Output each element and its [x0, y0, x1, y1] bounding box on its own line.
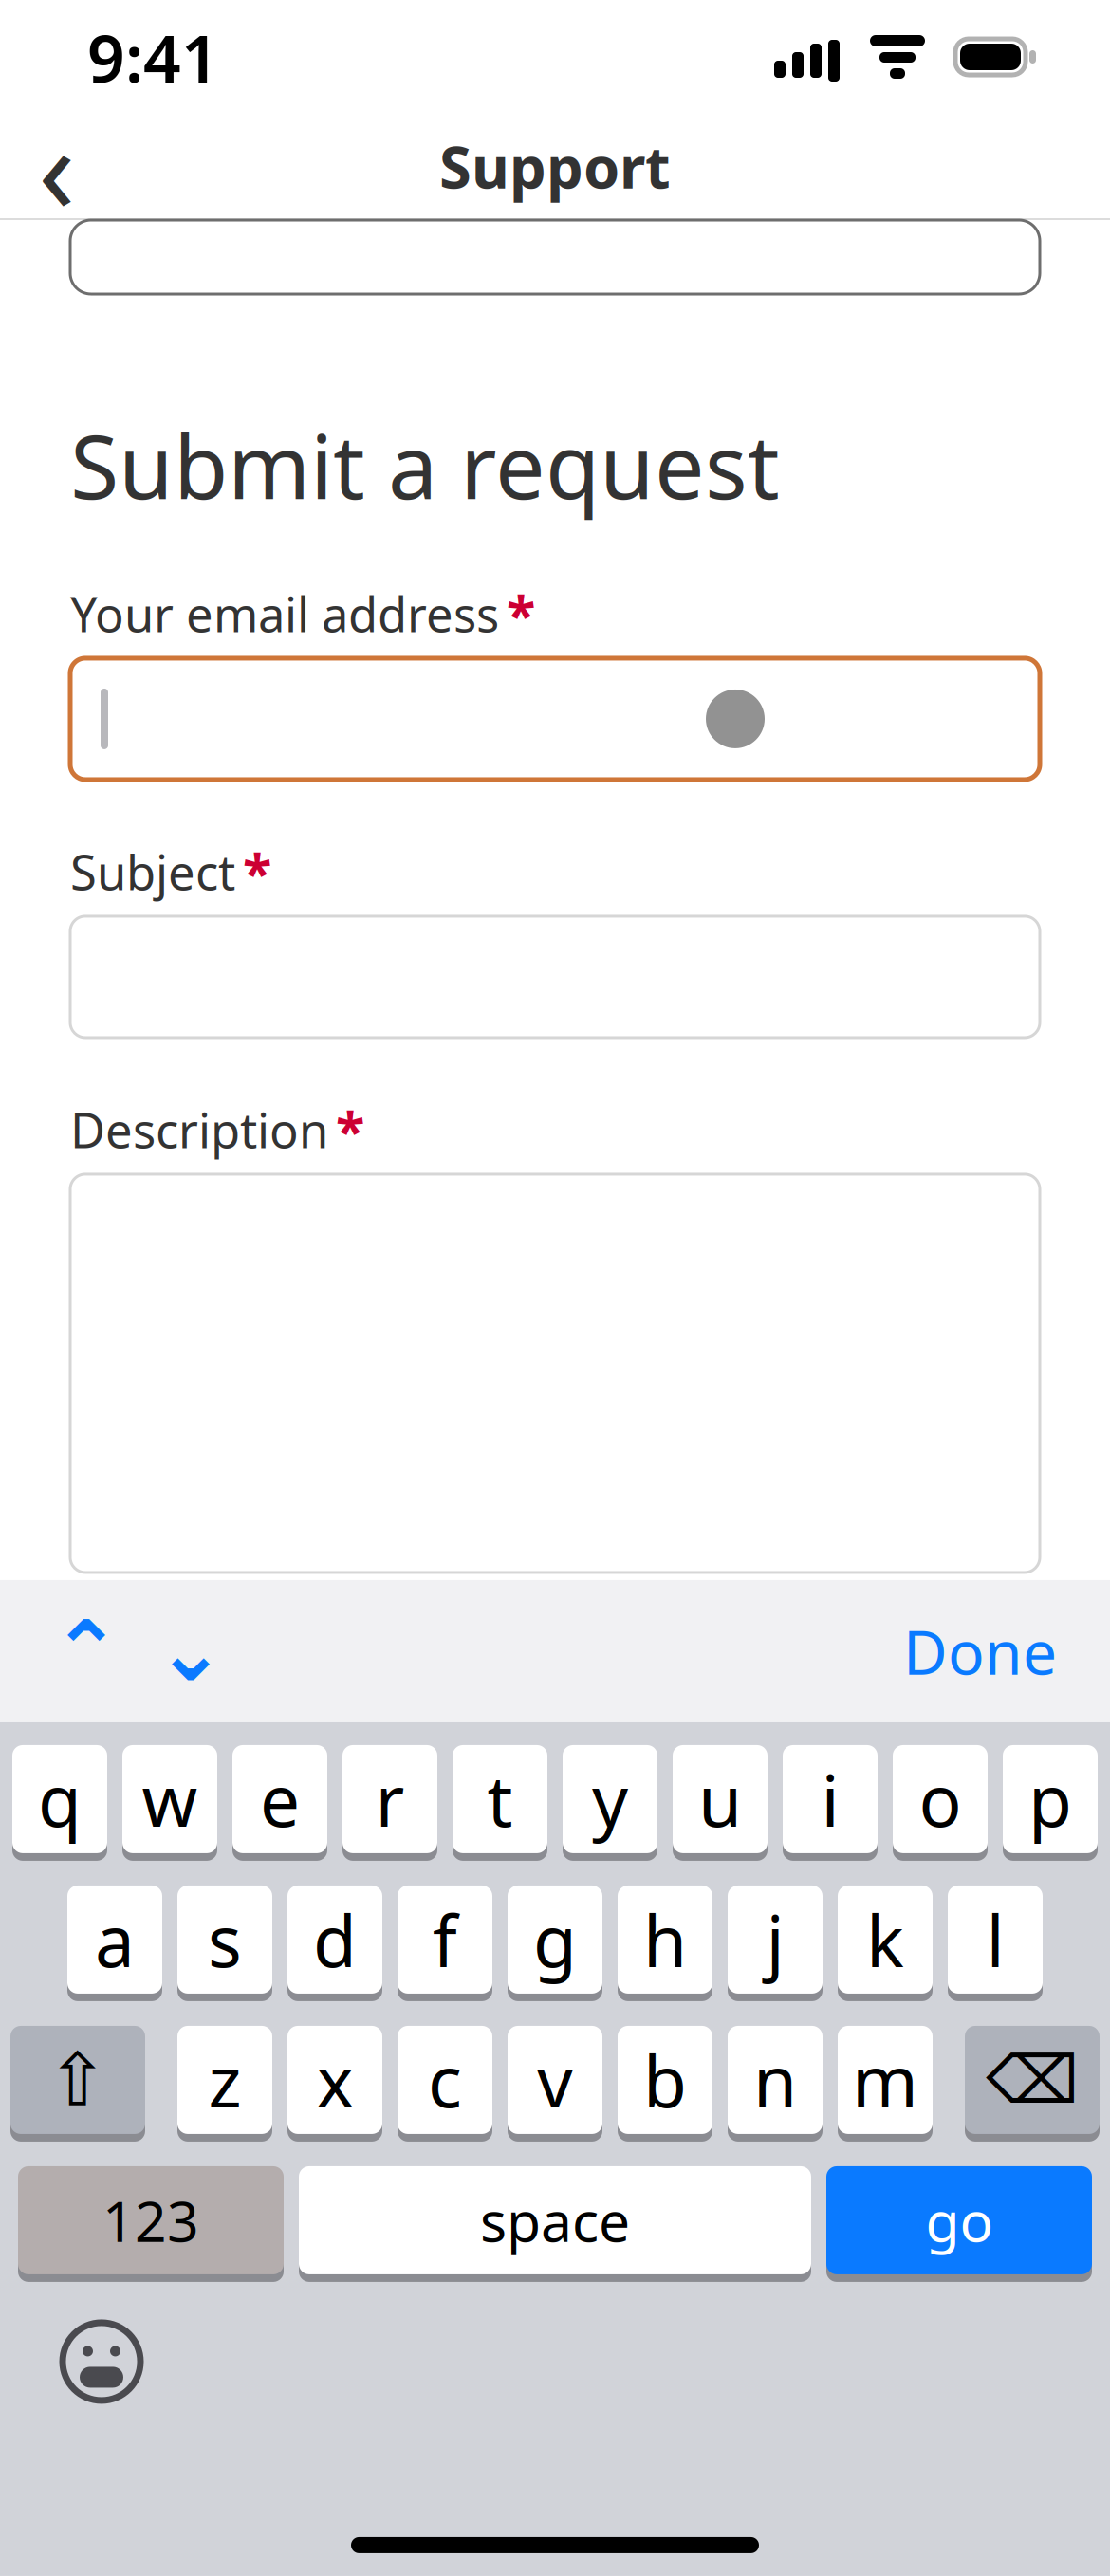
staticText: e — [260, 1752, 300, 1846]
staticText: p — [1028, 1752, 1072, 1846]
button[interactable]: a — [67, 1884, 162, 2001]
button[interactable]: f — [398, 1884, 492, 2001]
button[interactable]: l — [948, 1884, 1043, 2001]
button[interactable]: Previous field — [34, 1599, 139, 1703]
staticText: ⌄ — [156, 1604, 226, 1699]
staticText: q — [38, 1752, 82, 1846]
staticText: j — [766, 1893, 784, 1987]
staticText: b — [643, 2033, 687, 2127]
staticText: z — [208, 2033, 241, 2127]
staticText: Description — [70, 1098, 328, 1161]
button[interactable]: Next field — [139, 1599, 243, 1703]
staticText: v — [537, 2033, 573, 2127]
button[interactable]: m — [838, 2024, 933, 2142]
staticText: t — [487, 1752, 513, 1846]
staticText: u — [698, 1752, 742, 1846]
staticText: Your email address — [70, 582, 499, 646]
staticText: ⇧ — [47, 2038, 109, 2122]
staticText: 123 — [102, 2183, 199, 2257]
staticText: n — [753, 2033, 797, 2127]
staticText: * — [507, 578, 535, 649]
button[interactable]: j — [728, 1884, 823, 2001]
button[interactable]: x — [287, 2024, 382, 2142]
staticText: l — [986, 1893, 1004, 1987]
staticText: h — [643, 1893, 687, 1987]
staticText: * — [243, 836, 271, 907]
button[interactable]: g — [508, 1884, 602, 2001]
button[interactable]: k — [838, 1884, 933, 2001]
staticText: x — [316, 2033, 353, 2127]
button[interactable]: z — [177, 2024, 272, 2142]
staticText: Done — [903, 1611, 1057, 1691]
staticText: a — [95, 1893, 135, 1987]
button[interactable]: Done — [888, 1599, 1072, 1703]
button[interactable]: i — [783, 1743, 878, 1861]
staticText: k — [866, 1893, 904, 1987]
button[interactable]: space — [299, 2164, 811, 2282]
button[interactable]: w — [122, 1743, 217, 1861]
button[interactable]: d — [287, 1884, 382, 2001]
staticText: r — [375, 1752, 405, 1846]
staticText: Support — [439, 127, 671, 205]
staticText: o — [919, 1752, 962, 1846]
staticText: f — [433, 1893, 457, 1987]
staticText: 9:41 — [87, 13, 219, 101]
button[interactable]: Back — [0, 114, 114, 218]
button[interactable]: v — [508, 2024, 602, 2142]
button[interactable]: h — [618, 1884, 712, 2001]
button[interactable] — [70, 916, 1040, 1038]
button[interactable]: s — [177, 1884, 272, 2001]
button[interactable]: e — [232, 1743, 327, 1861]
button[interactable]: 123 — [18, 2164, 284, 2282]
button[interactable]: t — [453, 1743, 547, 1861]
button[interactable]: u — [673, 1743, 768, 1861]
button[interactable]: y — [563, 1743, 657, 1861]
staticText: * — [336, 1094, 364, 1165]
button[interactable]: ⌫ — [965, 2024, 1100, 2142]
button[interactable]: c — [398, 2024, 492, 2142]
staticText: y — [592, 1752, 628, 1846]
staticText: ⌃ — [51, 1604, 121, 1699]
staticText: Subject — [70, 840, 235, 903]
button[interactable]: Emoji keyboard — [49, 2314, 154, 2409]
button[interactable]: o — [893, 1743, 988, 1861]
staticText: d — [313, 1893, 357, 1987]
button[interactable]: b — [618, 2024, 712, 2142]
staticText: i — [821, 1752, 839, 1846]
staticText: Submit a request — [70, 406, 780, 523]
staticText: w — [142, 1752, 198, 1846]
staticText: go — [925, 2183, 993, 2257]
staticText: ⌫ — [986, 2043, 1079, 2117]
staticText: ‹ — [38, 85, 76, 247]
button[interactable]: n — [728, 2024, 823, 2142]
staticText: space — [480, 2183, 630, 2257]
staticText: m — [852, 2033, 918, 2127]
button[interactable]: ⇧ — [10, 2024, 145, 2142]
button[interactable]: r — [342, 1743, 437, 1861]
button[interactable]: q — [12, 1743, 107, 1861]
staticText: s — [208, 1893, 242, 1987]
button[interactable]: go — [826, 2164, 1092, 2282]
button[interactable] — [70, 658, 1040, 780]
staticText: g — [533, 1893, 577, 1987]
button[interactable]: p — [1003, 1743, 1098, 1861]
button[interactable] — [70, 1174, 1040, 1572]
staticText: c — [428, 2033, 462, 2127]
